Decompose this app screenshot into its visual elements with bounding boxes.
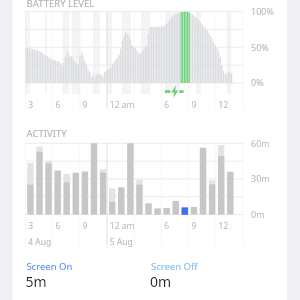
button[interactable]: [0, 0, 300, 300]
